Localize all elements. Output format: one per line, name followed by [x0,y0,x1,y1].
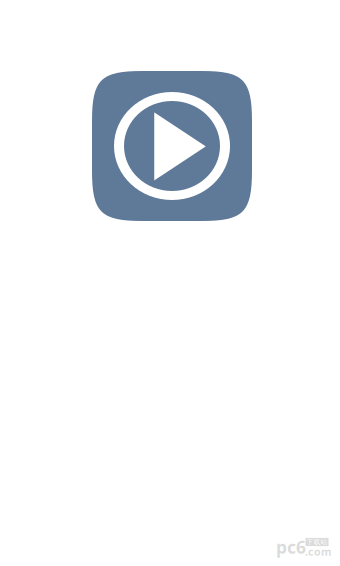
button[interactable]: Play [92,71,252,221]
staticText: 下载站 [306,538,327,546]
staticText: pc6 [276,535,306,558]
staticText: .com [305,544,331,559]
